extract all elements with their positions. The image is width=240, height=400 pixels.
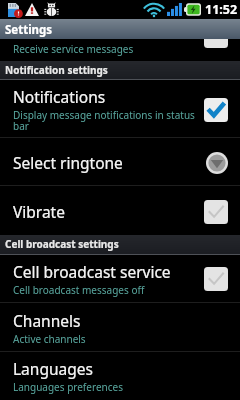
staticText: Display message notifications in status … xyxy=(13,108,196,133)
staticText: Notifications xyxy=(13,86,106,107)
button[interactable]: Receive service messages xyxy=(0,39,240,61)
staticText: Channels xyxy=(13,310,81,331)
staticText: Receive service messages xyxy=(13,42,134,56)
staticText: Cell broadcast service xyxy=(13,261,171,282)
button[interactable]: Channels xyxy=(0,303,240,352)
staticText: 11:52 xyxy=(205,1,238,18)
button[interactable]: Cell broadcast service xyxy=(0,255,240,303)
button[interactable]: Notifications xyxy=(0,80,240,138)
staticText: Settings xyxy=(5,22,53,38)
staticText: Languages preferences xyxy=(13,380,123,394)
button[interactable]: Vibrate xyxy=(0,186,240,235)
button[interactable]: Select ringtone xyxy=(0,138,240,186)
button[interactable]: Languages xyxy=(0,352,240,400)
other: Select ringtone xyxy=(206,152,228,174)
staticText: Notification settings xyxy=(5,63,108,77)
staticText: Vibrate xyxy=(13,201,65,222)
staticText: Cell broadcast messages off xyxy=(13,283,145,297)
staticText: Active channels xyxy=(13,332,86,346)
staticText: Cell broadcast settings xyxy=(5,237,119,251)
staticText: Languages xyxy=(13,358,93,379)
staticText: Select ringtone xyxy=(13,152,123,173)
